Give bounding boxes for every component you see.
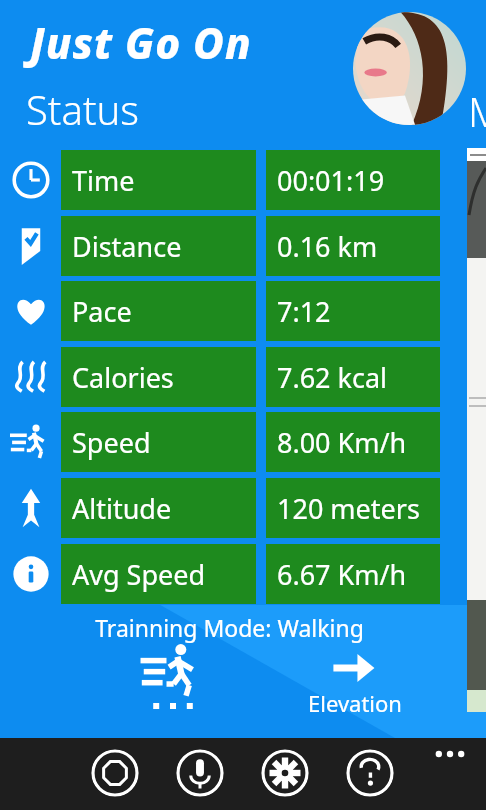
staticText: Avg Speed <box>72 556 206 593</box>
staticText: Altitude <box>72 490 172 527</box>
button[interactable]: Avg Speed <box>0 544 440 604</box>
staticText: Time <box>72 162 135 199</box>
staticText: 8.00 Km/h <box>277 424 407 461</box>
button[interactable]: Help <box>346 749 394 797</box>
staticText: 0.16 km <box>277 228 378 265</box>
button[interactable]: Elevation <box>295 648 415 718</box>
button[interactable]: Distance <box>0 216 440 276</box>
staticText: 7.62 kcal <box>277 359 388 396</box>
staticText: M <box>468 84 486 138</box>
staticText: 6.67 Km/h <box>277 556 407 593</box>
staticText: 120 meters <box>277 490 420 527</box>
button[interactable]: Time <box>0 150 440 210</box>
button[interactable]: Profile photo <box>353 12 466 125</box>
staticText: 7:12 <box>277 293 331 330</box>
button[interactable]: Training mode <box>118 645 228 711</box>
staticText: Speed <box>72 424 151 461</box>
staticText: Calories <box>72 359 174 396</box>
staticText: 00:01:19 <box>277 162 385 199</box>
button[interactable]: Speed <box>0 412 440 472</box>
button[interactable]: Settings <box>261 749 309 797</box>
button[interactable]: More options <box>430 740 470 768</box>
button[interactable]: Pace <box>0 281 440 341</box>
button[interactable]: Voice <box>176 749 224 797</box>
button[interactable]: Calories <box>0 347 440 407</box>
staticText: Trainning Mode: Walking <box>95 612 364 643</box>
staticText: Just Go On <box>30 14 252 71</box>
staticText: Distance <box>72 228 182 265</box>
staticText: Elevation <box>308 688 402 718</box>
button[interactable]: Stop <box>91 749 139 797</box>
button[interactable]: Altitude <box>0 478 440 538</box>
staticText: Pace <box>72 293 132 330</box>
staticText: Status <box>26 82 139 136</box>
